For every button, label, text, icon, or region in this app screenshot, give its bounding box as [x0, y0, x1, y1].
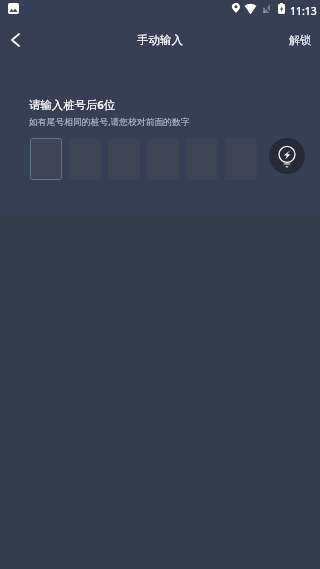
button[interactable]: Digit 1	[30, 138, 62, 180]
button[interactable]: Flashlight	[269, 138, 305, 174]
staticText: 手动输入	[137, 33, 183, 47]
staticText: 解锁	[289, 33, 311, 47]
staticText: 如有尾号相同的桩号,请您校对前面的数字	[29, 116, 190, 128]
button[interactable]: 解锁	[277, 27, 320, 53]
staticText: 11:13	[290, 4, 317, 18]
button[interactable]: Back	[0, 22, 28, 57]
staticText: 请输入桩号后6位	[29, 97, 116, 113]
